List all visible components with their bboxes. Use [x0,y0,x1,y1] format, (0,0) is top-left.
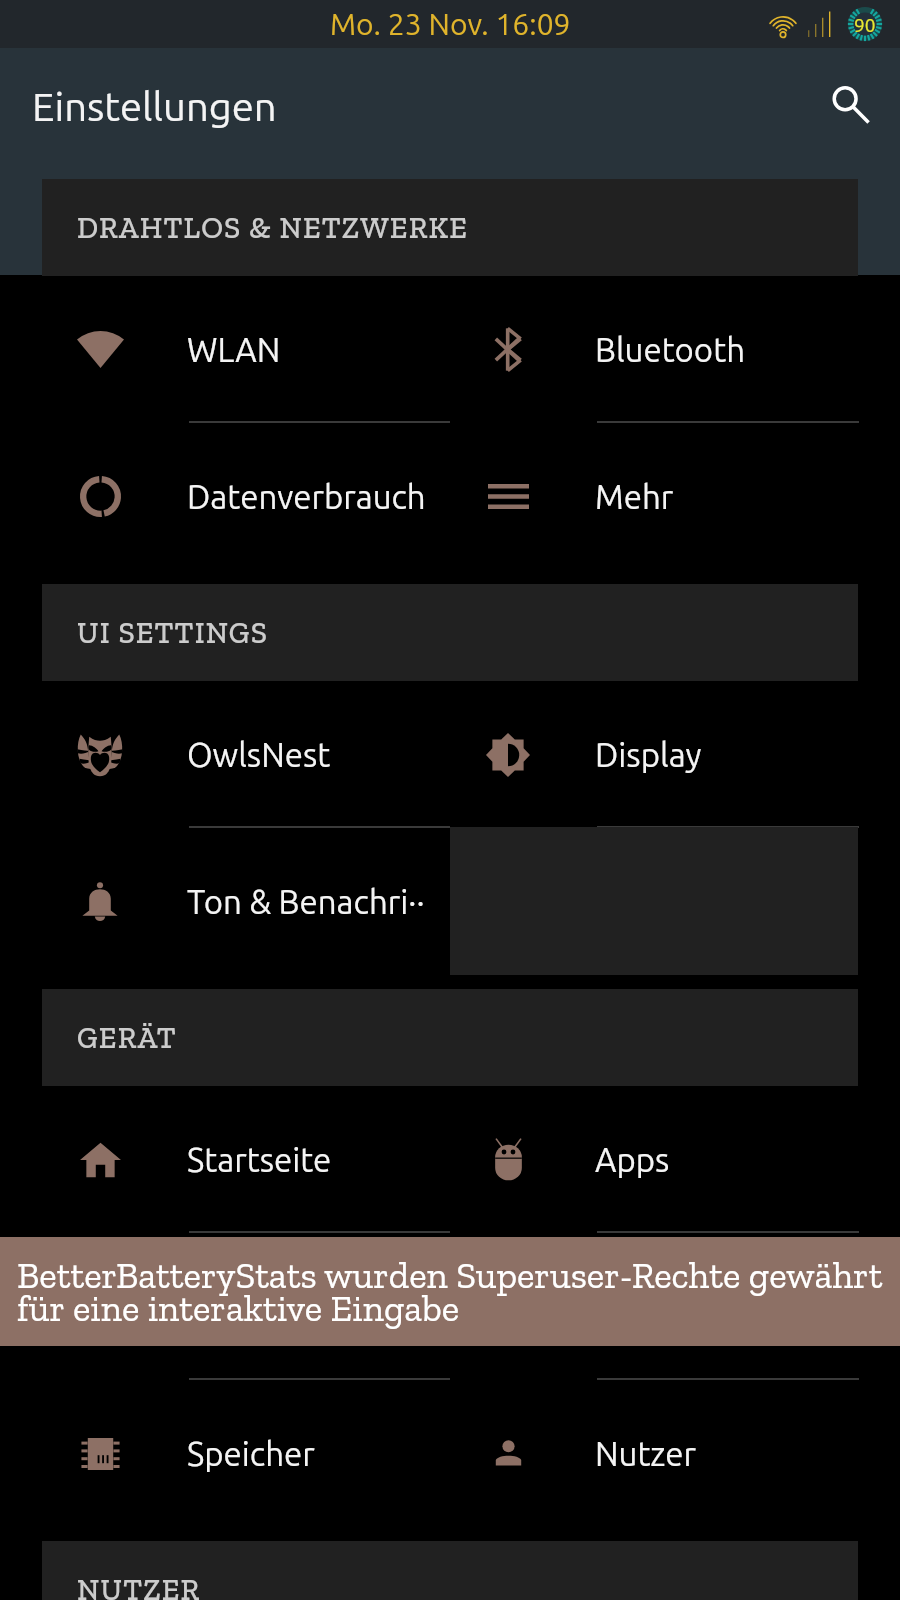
button[interactable]: Startseite [0,1086,450,1233]
staticText: Bluetooth [595,331,745,368]
staticText: Datenverbrauch [187,478,426,515]
staticText: NUTZER [77,1572,201,1600]
button[interactable]: OwlsNest [0,681,450,828]
button[interactable]: Suchen [817,71,883,137]
button [408,828,858,975]
staticText: Speicher [187,1435,315,1472]
button[interactable]: WLAN [0,276,450,423]
staticText: 90 [854,14,876,35]
staticText: BetterBatteryStats wurden Superuser-Rech… [17,1253,883,1330]
staticText: Startseite [187,1141,332,1178]
staticText: GERÄT [77,1020,177,1056]
staticText: Nutzer [595,1435,696,1472]
button[interactable]: Nutzer [408,1380,858,1527]
staticText: Mo. 23 Nov. 16:09 [330,7,571,41]
button[interactable]: Display [408,681,858,828]
button [0,1233,450,1380]
staticText: OwlsNest [187,736,331,773]
staticText: Display [595,736,702,773]
button [408,1233,858,1380]
staticText: UI SETTINGS [77,615,269,651]
button[interactable]: Apps [408,1086,858,1233]
button[interactable]: Speicher [0,1380,450,1527]
button[interactable]: Datenverbrauch [0,423,450,570]
staticText: WLAN [187,331,281,368]
staticText: Einstellungen [32,84,277,129]
staticText: Apps [595,1141,670,1178]
staticText: Mehr [595,478,674,515]
staticText: DRAHTLOS & NETZWERKE [77,210,469,246]
button[interactable]: Bluetooth [408,276,858,423]
staticText: Ton & Benachri·· [187,883,425,920]
button[interactable]: Mehr [408,423,858,570]
button[interactable]: Ton & Benachri·· [0,828,450,975]
